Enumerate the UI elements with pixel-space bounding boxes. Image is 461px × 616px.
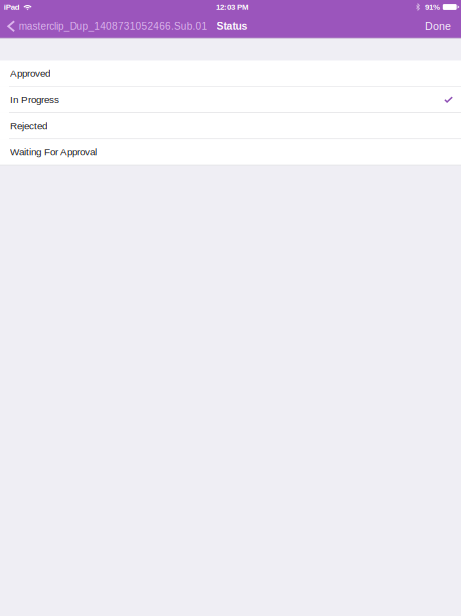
button[interactable]: Waiting For Approval (0, 139, 461, 165)
staticText: Rejected (10, 120, 47, 131)
button[interactable]: Done (417, 14, 461, 38)
staticText: Approved (10, 68, 50, 79)
staticText: 91% (425, 3, 440, 11)
button[interactable]: In Progress (0, 87, 461, 113)
staticText: masterclip_Dup_1408731052466.Sub.01 (19, 21, 207, 32)
button[interactable]: Approved (0, 60, 461, 87)
staticText: In Progress (10, 94, 59, 105)
staticText: 12:03 PM (216, 3, 249, 11)
button[interactable]: Rejected (0, 113, 461, 139)
staticText: Waiting For Approval (10, 146, 97, 157)
staticText: Status (216, 20, 247, 32)
staticText: Done (425, 20, 451, 32)
button[interactable]: Back to masterclip_Dup_1408731052466.Sub… (0, 14, 213, 38)
staticText: iPad (4, 3, 20, 11)
